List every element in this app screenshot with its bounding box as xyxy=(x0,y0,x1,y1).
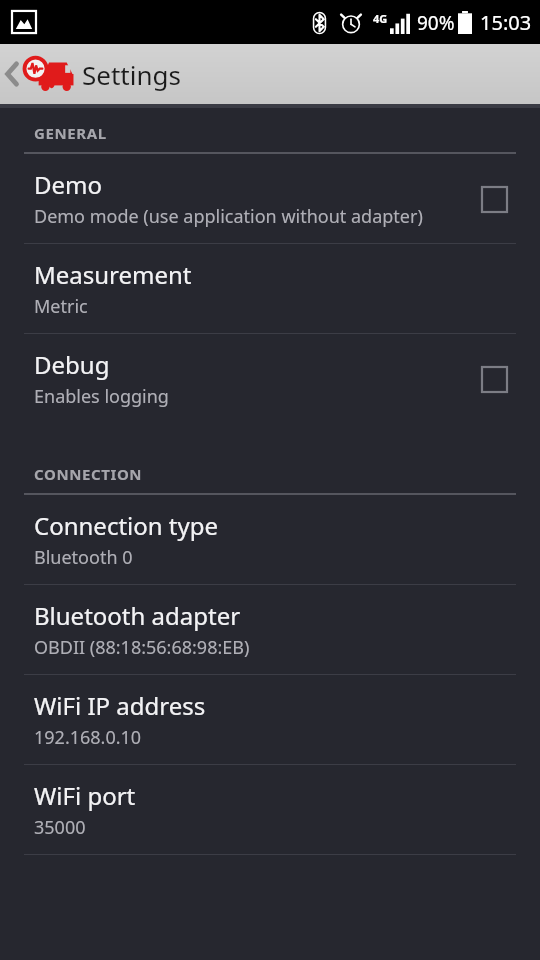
staticText: Debug xyxy=(34,348,110,381)
button[interactable]: Debug xyxy=(0,334,540,423)
staticText: GENERAL xyxy=(34,123,107,143)
button[interactable]: Navigate up xyxy=(0,44,76,104)
button[interactable]: Measurement xyxy=(0,244,540,333)
button[interactable]: WiFi IP address xyxy=(0,675,540,764)
staticText: CONNECTION xyxy=(34,464,143,484)
staticText: 15:03 xyxy=(480,9,532,36)
staticText: 35000 xyxy=(34,815,86,840)
staticText: Connection type xyxy=(34,509,219,542)
staticText: 90% xyxy=(417,10,455,36)
staticText: Demo xyxy=(34,168,103,201)
staticText: 4G xyxy=(373,11,388,26)
button[interactable]: WiFi port xyxy=(0,765,540,854)
button[interactable]: Debug checkbox xyxy=(472,357,516,401)
button[interactable]: Demo xyxy=(0,154,540,243)
staticText: Demo mode (use application without adapt… xyxy=(34,204,423,229)
staticText: Metric xyxy=(34,294,88,319)
staticText: OBDII (88:18:56:68:98:EB) xyxy=(34,635,250,660)
button[interactable]: Demo checkbox xyxy=(472,177,516,221)
staticText: Settings xyxy=(82,57,181,92)
staticText: Measurement xyxy=(34,258,192,291)
staticText: WiFi port xyxy=(34,779,136,812)
staticText: 192.168.0.10 xyxy=(34,725,142,750)
staticText: Bluetooth adapter xyxy=(34,599,241,632)
button[interactable]: Connection type xyxy=(0,495,540,584)
staticText: Bluetooth 0 xyxy=(34,545,133,570)
staticText: Enables logging xyxy=(34,384,169,409)
staticText: WiFi IP address xyxy=(34,689,206,722)
button[interactable]: Bluetooth adapter xyxy=(0,585,540,674)
